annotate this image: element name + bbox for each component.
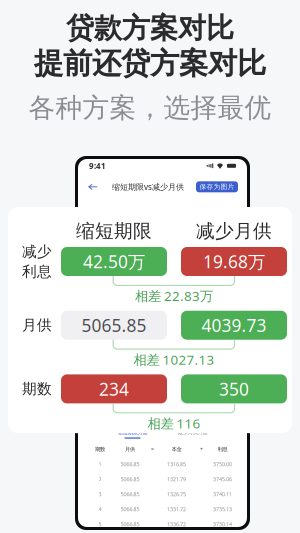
staticText: 1331.72 [167, 506, 186, 513]
staticText: 1326.75 [167, 491, 186, 498]
staticText: 1 [98, 461, 101, 468]
staticText: 1321.79 [167, 476, 186, 483]
staticText: 相差 22.83万 [135, 287, 213, 305]
staticText: 3730.14 [213, 521, 232, 528]
staticText: 5066.85 [120, 461, 139, 468]
button[interactable]: 保存为图片 [196, 181, 238, 192]
staticText: 1316.85 [167, 461, 186, 468]
staticText: 利息 [22, 262, 52, 280]
staticText: 5066.85 [120, 521, 139, 528]
staticText: 缩短期限vs减少月供 [112, 181, 184, 192]
staticText: 3 [98, 491, 101, 498]
staticText: 3740.11 [213, 491, 232, 498]
staticText: 19.68万 [203, 250, 265, 273]
staticText: 减少月供 [196, 219, 272, 242]
staticText: 相差 1027.13 [133, 351, 214, 368]
staticText: 贷款方案对比 [66, 11, 234, 45]
staticText: 1336.72 [167, 521, 186, 528]
button[interactable]: 减少月供方案 [177, 429, 207, 439]
staticText: 9:41 [89, 160, 106, 171]
staticText: 4 [98, 506, 101, 513]
staticText: 5066.85 [120, 506, 139, 513]
staticText: 缩短期限方案 [117, 429, 147, 436]
staticText: 4039.73 [201, 314, 266, 337]
staticText: 利息 [217, 446, 227, 452]
staticText: 5 [98, 521, 101, 528]
staticText: 3750.00 [213, 461, 232, 468]
staticText: 3735.13 [213, 506, 232, 513]
staticText: 350 [219, 377, 249, 400]
staticText: + [200, 446, 203, 453]
button[interactable]: Back [86, 180, 100, 194]
staticText: 月供 [22, 316, 52, 334]
staticText: 3745.06 [213, 476, 232, 483]
staticText: 减少月供方案 [177, 429, 207, 436]
staticText: 月供 [125, 446, 135, 452]
staticText: 5066.85 [120, 476, 139, 483]
staticText: 保存为图片 [199, 183, 234, 191]
staticText: 各种方案，选择最优 [28, 91, 271, 124]
staticText: = [151, 446, 154, 453]
staticText: 5066.85 [120, 491, 139, 498]
staticText: 42.50万 [83, 250, 145, 273]
staticText: 提前还贷方案对比 [34, 45, 266, 81]
staticText: 2 [98, 476, 101, 483]
staticText: 相差 116 [147, 414, 200, 432]
staticText: 234 [99, 377, 129, 400]
button[interactable]: 缩短期限方案 [117, 429, 147, 439]
staticText: 缩短期限 [76, 219, 152, 242]
staticText: 本金 [171, 446, 181, 452]
staticText: 减少 [22, 242, 52, 260]
staticText: 期数 [22, 380, 52, 398]
staticText: 期数 [95, 446, 105, 452]
staticText: 5065.85 [81, 314, 146, 337]
